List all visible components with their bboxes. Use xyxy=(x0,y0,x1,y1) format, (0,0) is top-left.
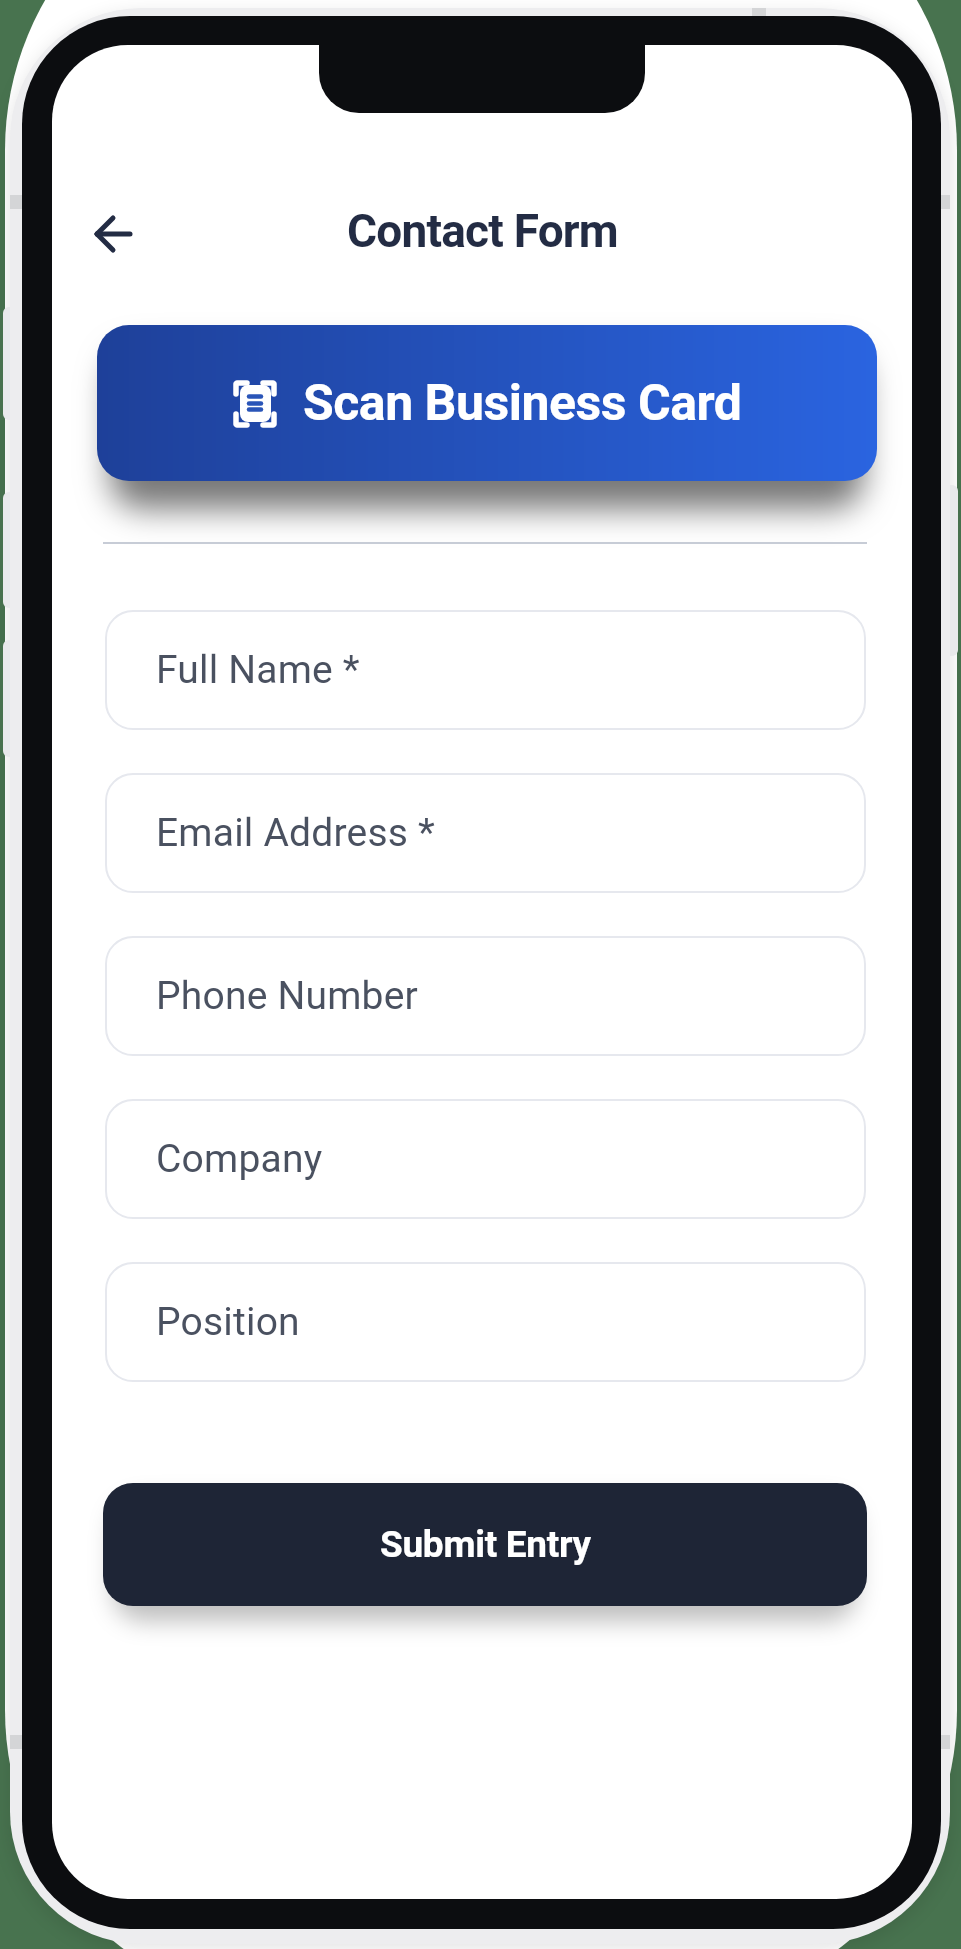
staticText: Phone Number xyxy=(156,973,418,1019)
button[interactable]: Submit Entry xyxy=(103,1483,867,1606)
staticText: Email Address * xyxy=(156,810,435,856)
button[interactable]: Scan Business Card xyxy=(97,325,877,481)
button[interactable]: Phone Number xyxy=(105,936,866,1056)
staticText: Contact Form xyxy=(347,204,618,258)
button[interactable] xyxy=(82,203,144,265)
button[interactable]: Email Address * xyxy=(105,773,866,893)
staticText: Position xyxy=(156,1299,300,1345)
staticText: Submit Entry xyxy=(380,1523,591,1566)
button[interactable]: Company xyxy=(105,1099,866,1219)
staticText: Scan Business Card xyxy=(303,374,742,433)
staticText: Full Name * xyxy=(156,647,360,693)
button[interactable]: Full Name * xyxy=(105,610,866,730)
button[interactable]: Position xyxy=(105,1262,866,1382)
staticText: Company xyxy=(156,1136,323,1182)
